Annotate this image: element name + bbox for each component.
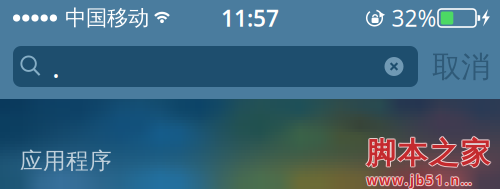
staticText: 脚本之家 bbox=[366, 136, 490, 172]
button[interactable]: 取消 bbox=[428, 48, 494, 86]
staticText: 脚本之家 bbox=[366, 136, 489, 172]
staticText: 取消 bbox=[432, 49, 490, 85]
staticText: www.jb51.net bbox=[366, 172, 476, 189]
staticText: www.jb51.net bbox=[367, 171, 478, 189]
staticText: 11:57 bbox=[221, 3, 279, 33]
button[interactable]: Clear text bbox=[382, 54, 406, 78]
button[interactable]: . bbox=[13, 46, 418, 87]
staticText: 脚本之家 bbox=[366, 135, 490, 171]
staticText: www.jb51.net bbox=[366, 172, 477, 189]
staticText: 脚本之家 bbox=[367, 135, 491, 171]
staticText: 应用程序 bbox=[20, 147, 112, 175]
staticText: www.jb51.net bbox=[365, 171, 476, 189]
staticText: 脚本之家 bbox=[367, 134, 490, 170]
staticText: www.jb51.net bbox=[367, 170, 478, 188]
staticText: 脚本之家 bbox=[366, 134, 489, 170]
staticText: . bbox=[52, 47, 60, 86]
staticText: 脚本之家 bbox=[367, 136, 490, 172]
staticText: www.jb51.net bbox=[366, 170, 477, 188]
staticText: www.jb51.net bbox=[366, 171, 477, 189]
staticText: 32% bbox=[391, 3, 436, 33]
staticText: 脚本之家 bbox=[366, 134, 490, 170]
staticText: www.jb51.net bbox=[367, 172, 478, 189]
staticText: 脚本之家 bbox=[365, 135, 489, 171]
staticText: 中国移动 bbox=[65, 5, 149, 31]
staticText: www.jb51.net bbox=[366, 170, 476, 188]
